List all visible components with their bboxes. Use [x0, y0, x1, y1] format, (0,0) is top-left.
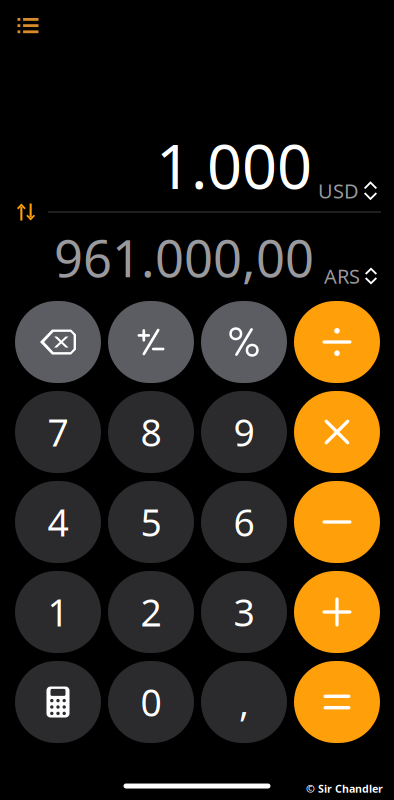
- button[interactable]: Swap currencies: [9, 199, 43, 225]
- button[interactable]: 9: [201, 391, 287, 473]
- staticText: 961.000,00: [54, 224, 314, 291]
- button[interactable]: Equals: [294, 661, 380, 743]
- button[interactable]: 3: [201, 571, 287, 653]
- button[interactable]: ,: [201, 661, 287, 743]
- button[interactable]: Divide: [294, 301, 380, 383]
- button[interactable]: History: [6, 5, 50, 45]
- staticText: ARS: [324, 263, 360, 289]
- button[interactable]: 6: [201, 481, 287, 563]
- button[interactable]: Percent: [201, 301, 287, 383]
- staticText: 3: [233, 587, 254, 637]
- staticText: 1: [47, 587, 68, 637]
- staticText: USD: [318, 177, 359, 204]
- button[interactable]: Plus: [294, 571, 380, 653]
- button[interactable]: Plus minus: [108, 301, 194, 383]
- staticText: 7: [47, 407, 68, 457]
- button[interactable]: 2: [108, 571, 194, 653]
- staticText: 9: [233, 407, 254, 457]
- button[interactable]: 4: [15, 481, 101, 563]
- staticText: ,: [239, 677, 249, 727]
- button[interactable]: 0: [108, 661, 194, 743]
- staticText: 6: [233, 497, 254, 547]
- staticText: © Sir Chandler: [306, 781, 383, 796]
- button[interactable]: 8: [108, 391, 194, 473]
- staticText: 1.000: [156, 125, 312, 206]
- staticText: 0: [140, 677, 161, 727]
- button[interactable]: Calculator: [15, 661, 101, 743]
- button[interactable]: 5: [108, 481, 194, 563]
- button[interactable]: Multiply: [294, 391, 380, 473]
- staticText: 8: [140, 407, 161, 457]
- button[interactable]: Minus: [294, 481, 380, 563]
- staticText: 5: [140, 497, 161, 547]
- button[interactable]: 1: [15, 571, 101, 653]
- button[interactable]: Delete: [15, 301, 101, 383]
- staticText: 4: [47, 497, 68, 547]
- staticText: 2: [140, 587, 161, 637]
- button[interactable]: 7: [15, 391, 101, 473]
